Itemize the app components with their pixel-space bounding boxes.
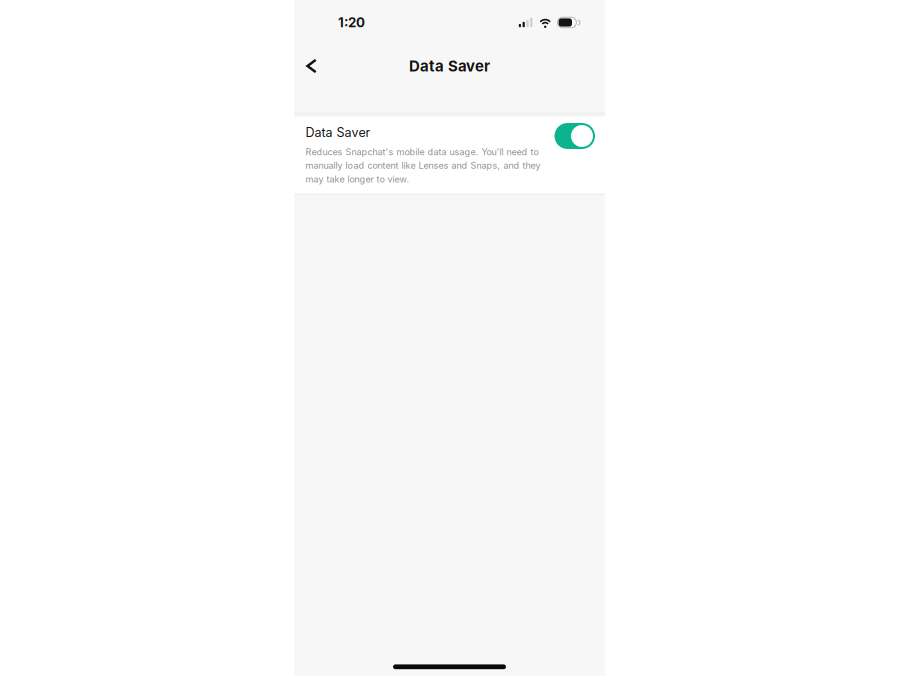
- staticText: Data Saver: [305, 125, 370, 140]
- staticText: 1:20: [338, 14, 365, 30]
- staticText: Reduces Snapchat's mobile data usage. Yo…: [305, 146, 540, 185]
- button[interactable]: Data Saver: [294, 116, 605, 194]
- staticText: Data Saver: [409, 57, 490, 75]
- button[interactable]: Data Saver, on: [554, 123, 595, 151]
- button[interactable]: Back: [294, 45, 327, 87]
